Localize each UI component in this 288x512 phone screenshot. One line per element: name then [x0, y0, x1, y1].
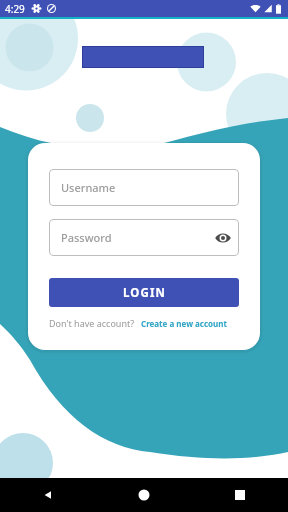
staticText: Password	[61, 230, 112, 245]
button[interactable]: LOGIN	[49, 278, 239, 307]
staticText: LOGIN	[123, 285, 166, 301]
staticText: Username	[61, 180, 116, 195]
button[interactable]: Back	[0, 478, 96, 512]
button[interactable]: Password	[49, 219, 239, 256]
staticText: Don't have account?	[49, 317, 135, 329]
button[interactable]: Home	[96, 478, 192, 512]
button[interactable]: Username	[49, 169, 239, 206]
staticText: 4:29	[5, 2, 25, 16]
button[interactable]: Create a new account	[141, 318, 227, 329]
button[interactable]: Recent apps	[192, 478, 288, 512]
button[interactable]: Show password	[213, 228, 233, 248]
staticText: Create a new account	[141, 318, 227, 329]
